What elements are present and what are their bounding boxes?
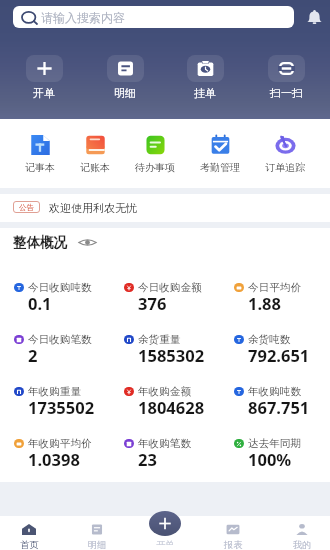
button[interactable]: 扫一扫 <box>263 55 309 100</box>
staticText: 开单 <box>33 86 55 100</box>
button[interactable]: 年收购笔数 <box>110 426 220 478</box>
button[interactable]: 首页 <box>7 524 51 550</box>
button[interactable]: 明细 <box>75 524 119 550</box>
staticText: 余货重量 <box>138 333 181 346</box>
staticText: 792.651 <box>248 344 310 366</box>
staticText: 整体概况 <box>13 234 67 251</box>
staticText: 考勤管理 <box>200 161 240 174</box>
staticText: 2 <box>28 344 38 366</box>
button[interactable]: Notifications <box>301 4 327 30</box>
staticText: 1735502 <box>28 396 95 418</box>
button[interactable]: 报表 <box>211 524 255 550</box>
staticText: 明细 <box>114 86 136 100</box>
button[interactable]: 明细 <box>102 55 148 100</box>
button[interactable]: 记账本 <box>80 135 110 174</box>
button[interactable]: 今日平均价 <box>220 270 330 322</box>
button[interactable]: 年收购平均价 <box>0 426 110 478</box>
button[interactable]: 开单 <box>21 55 67 100</box>
button[interactable]: 达去年同期 <box>220 426 330 478</box>
button[interactable]: 余货重量 <box>110 322 220 374</box>
staticText: 1.88 <box>248 292 281 314</box>
button[interactable]: Toggle visibility <box>77 232 97 252</box>
button[interactable]: 请输入搜索内容 <box>13 6 294 28</box>
staticText: 开单 <box>156 539 175 545</box>
button[interactable]: 开单 <box>143 511 187 545</box>
button[interactable]: 记事本 <box>25 135 55 174</box>
button[interactable]: 今日收购吨数 <box>0 270 110 322</box>
staticText: 今日收购金额 <box>138 281 202 294</box>
staticText: 余货吨数 <box>248 333 291 346</box>
staticText: 0.1 <box>28 292 52 314</box>
staticText: 挂单 <box>194 86 216 100</box>
button[interactable]: 余货吨数 <box>220 322 330 374</box>
staticText: 年收购笔数 <box>138 437 191 450</box>
staticText: 年收购重量 <box>28 385 81 398</box>
button[interactable]: 考勤管理 <box>200 135 240 174</box>
button[interactable]: 年收购吨数 <box>220 374 330 426</box>
button[interactable]: 今日收购金额 <box>110 270 220 322</box>
button[interactable]: 公告 <box>0 194 330 222</box>
staticText: 扫一扫 <box>270 86 303 100</box>
staticText: 公告 <box>19 203 34 212</box>
staticText: 376 <box>138 292 167 314</box>
staticText: 记事本 <box>25 161 55 174</box>
button[interactable]: 年收购重量 <box>0 374 110 426</box>
staticText: 23 <box>138 448 157 470</box>
staticText: 867.751 <box>248 396 310 418</box>
staticText: 请输入搜索内容 <box>41 10 125 25</box>
staticText: 达去年同期 <box>248 437 301 450</box>
staticText: 欢迎使用利农无忧 <box>49 201 137 215</box>
staticText: 1585302 <box>138 344 205 366</box>
staticText: 今日收购吨数 <box>28 281 92 294</box>
staticText: 年收购平均价 <box>28 437 92 450</box>
staticText: 今日收购笔数 <box>28 333 92 346</box>
staticText: 报表 <box>224 539 243 550</box>
staticText: 明细 <box>88 539 107 550</box>
button[interactable]: 我的 <box>280 524 324 550</box>
staticText: 1.0398 <box>28 448 80 470</box>
staticText: 1804628 <box>138 396 205 418</box>
button[interactable]: 年收购金额 <box>110 374 220 426</box>
staticText: 年收购吨数 <box>248 385 301 398</box>
staticText: 订单追踪 <box>265 161 305 174</box>
staticText: 待办事项 <box>135 161 175 174</box>
staticText: 100% <box>248 448 292 470</box>
button[interactable]: 待办事项 <box>135 135 175 174</box>
button[interactable]: 挂单 <box>182 55 228 100</box>
staticText: 我的 <box>293 539 312 550</box>
staticText: 首页 <box>20 539 39 550</box>
staticText: 今日平均价 <box>248 281 301 294</box>
staticText: 记账本 <box>80 161 110 174</box>
staticText: 年收购金额 <box>138 385 191 398</box>
button[interactable]: 订单追踪 <box>265 135 305 174</box>
button[interactable]: 今日收购笔数 <box>0 322 110 374</box>
